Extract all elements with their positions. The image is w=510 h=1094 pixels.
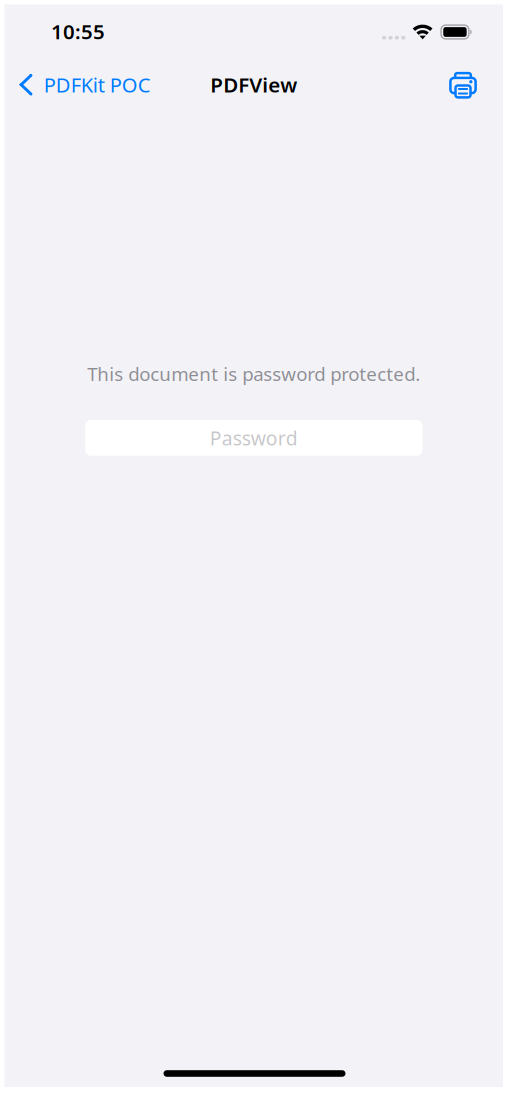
staticText: PDFView: [210, 70, 297, 98]
staticText: Password: [210, 425, 298, 451]
button[interactable]: PDFKit POC: [9, 63, 161, 107]
button[interactable]: Password: [85, 420, 422, 456]
staticText: PDFKit POC: [44, 71, 151, 98]
staticText: This document is password protected.: [87, 361, 420, 386]
staticText: 10:55: [51, 17, 105, 45]
button[interactable]: Print: [439, 63, 486, 107]
